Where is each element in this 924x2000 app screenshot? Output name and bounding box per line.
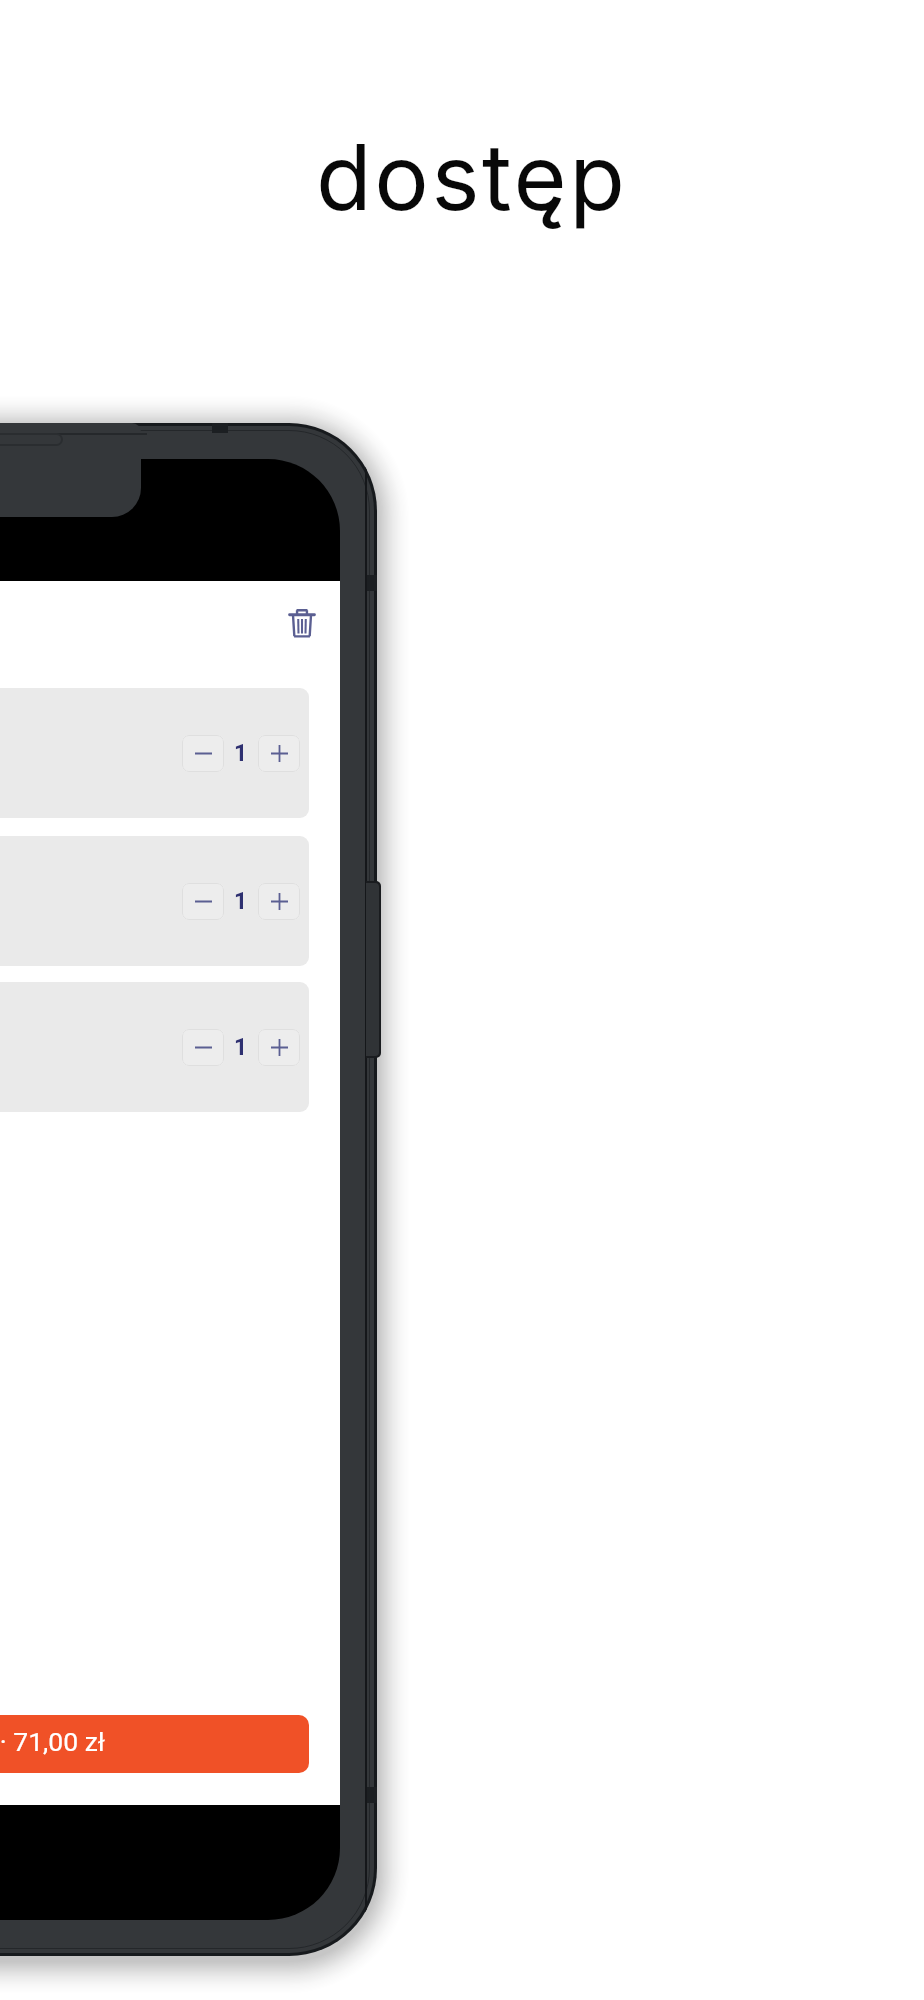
button[interactable]: Zwiększ ilość (258, 883, 300, 920)
button[interactable]: Zmniejsz ilość (182, 1029, 224, 1066)
button[interactable]: Zmniejsz ilość (182, 735, 224, 772)
button[interactable]: Zmniejsz ilość (0, 836, 309, 966)
button[interactable]: Usuń wszystko z koszyka (279, 600, 325, 646)
staticText: 1 (234, 1034, 248, 1061)
staticText: Zamawiam i płacę · 71,00 zł (0, 1726, 105, 1757)
button[interactable]: Zmniejsz ilość (182, 883, 224, 920)
button[interactable]: Zmniejsz ilość (0, 688, 309, 818)
button[interactable]: Zmniejsz ilość (0, 982, 309, 1112)
button[interactable]: Zwiększ ilość (258, 1029, 300, 1066)
button[interactable]: Zamawiam i płacę · 71,00 zł (0, 1715, 309, 1773)
staticText: 1 (234, 740, 248, 767)
staticText: dostęp (316, 122, 628, 232)
button[interactable]: Zwiększ ilość (258, 735, 300, 772)
staticText: 1 (234, 888, 248, 915)
